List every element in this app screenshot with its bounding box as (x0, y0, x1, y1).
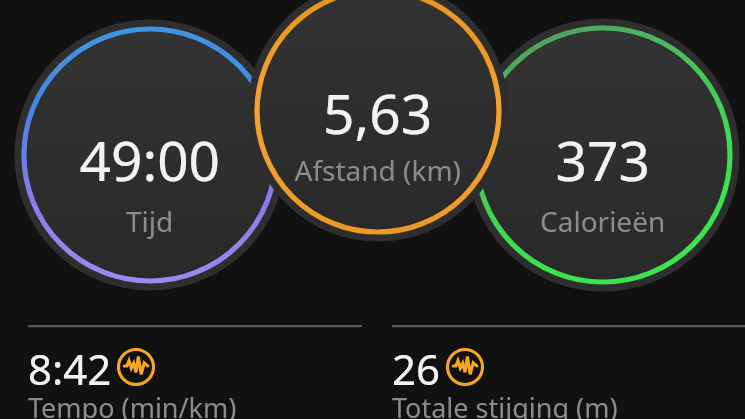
button[interactable]: Tempo 8:42 min/km (28, 340, 362, 419)
button[interactable]: Calorieën 373 (476, 28, 730, 282)
button[interactable]: Tijd 49:00 (24, 29, 276, 281)
button[interactable]: Afstand 5,63 km (257, 0, 499, 232)
button[interactable]: Totale stijging 26 m (392, 340, 726, 419)
